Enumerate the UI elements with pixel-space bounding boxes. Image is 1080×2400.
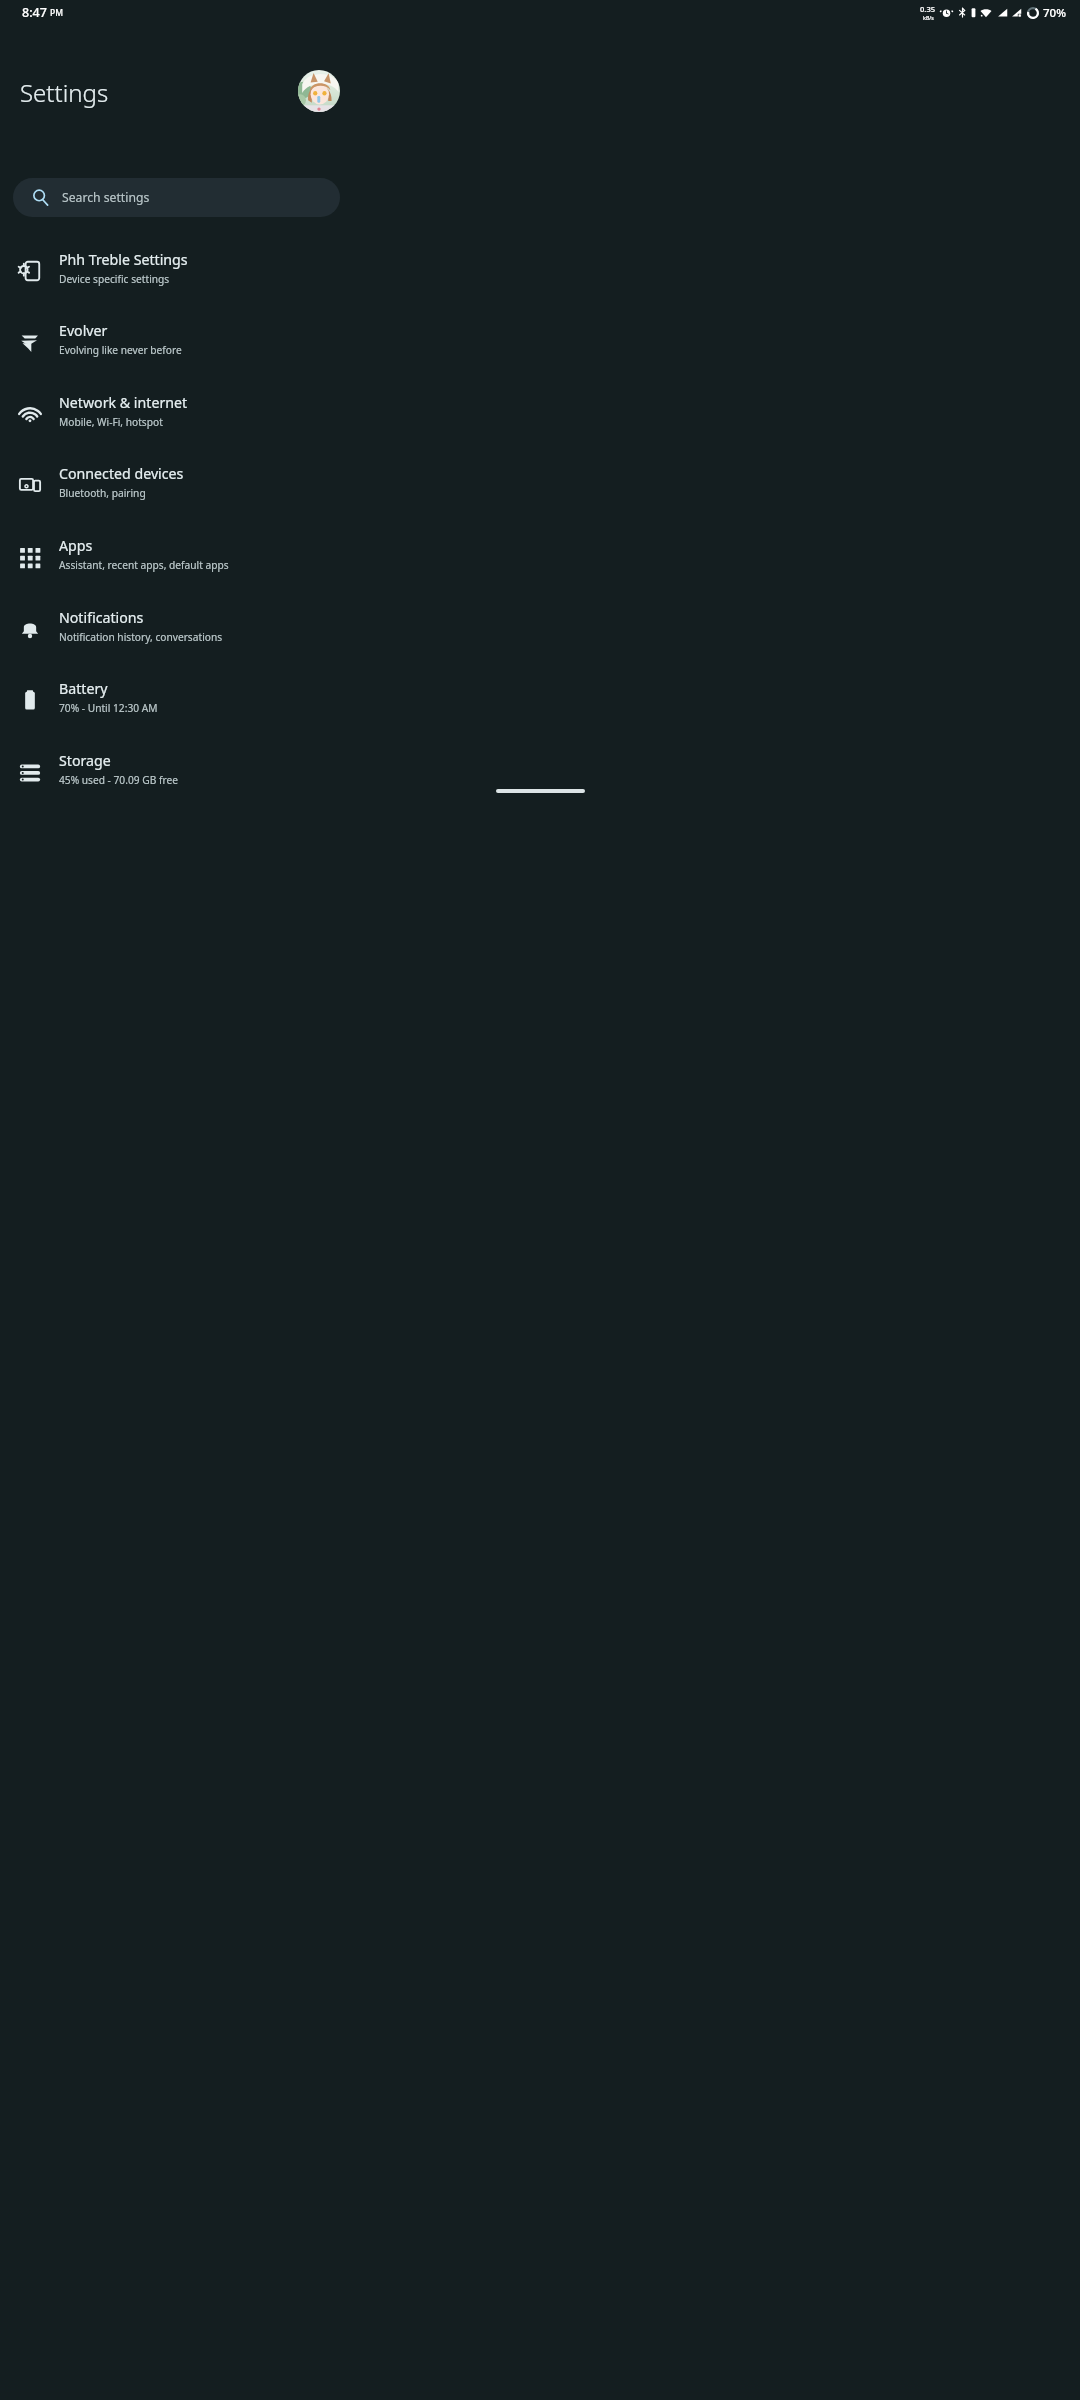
- button[interactable]: Battery: [0, 673, 1080, 745]
- button[interactable]: Account profile: [298, 70, 340, 112]
- staticText: Notification history, conversations: [59, 630, 223, 644]
- staticText: 8:47: [22, 4, 47, 21]
- staticText: Device specific settings: [59, 272, 170, 286]
- staticText: 70%: [1043, 5, 1066, 21]
- button[interactable]: Notifications: [0, 602, 1080, 674]
- button[interactable]: Network & internet: [0, 387, 1080, 459]
- staticText: Evolver: [59, 321, 108, 340]
- button[interactable]: Connected devices: [0, 458, 1080, 530]
- staticText: Settings: [20, 76, 109, 109]
- staticText: Assistant, recent apps, default apps: [59, 558, 229, 572]
- staticText: Mobile, Wi-Fi, hotspot: [59, 415, 163, 429]
- staticText: Battery: [59, 679, 108, 698]
- button[interactable]: Search settings: [13, 178, 340, 217]
- button[interactable]: Apps: [0, 530, 1080, 602]
- staticText: 70% - Until 12:30 AM: [59, 701, 158, 715]
- button[interactable]: Storage: [0, 745, 1080, 817]
- button[interactable]: Evolver: [0, 315, 1080, 387]
- staticText: PM: [50, 7, 63, 19]
- staticText: 0.35: [920, 4, 936, 14]
- staticText: 45% used - 70.09 GB free: [59, 773, 178, 787]
- staticText: Apps: [59, 536, 93, 555]
- staticText: Evolving like never before: [59, 343, 182, 357]
- staticText: Network & internet: [59, 393, 188, 412]
- staticText: Bluetooth, pairing: [59, 486, 146, 500]
- staticText: Phh Treble Settings: [59, 250, 188, 269]
- staticText: Search settings: [62, 189, 150, 206]
- staticText: Notifications: [59, 608, 144, 627]
- staticText: kB/s: [923, 14, 934, 21]
- button[interactable]: Phh Treble Settings: [0, 244, 1080, 316]
- staticText: Storage: [59, 751, 111, 770]
- staticText: Connected devices: [59, 464, 184, 483]
